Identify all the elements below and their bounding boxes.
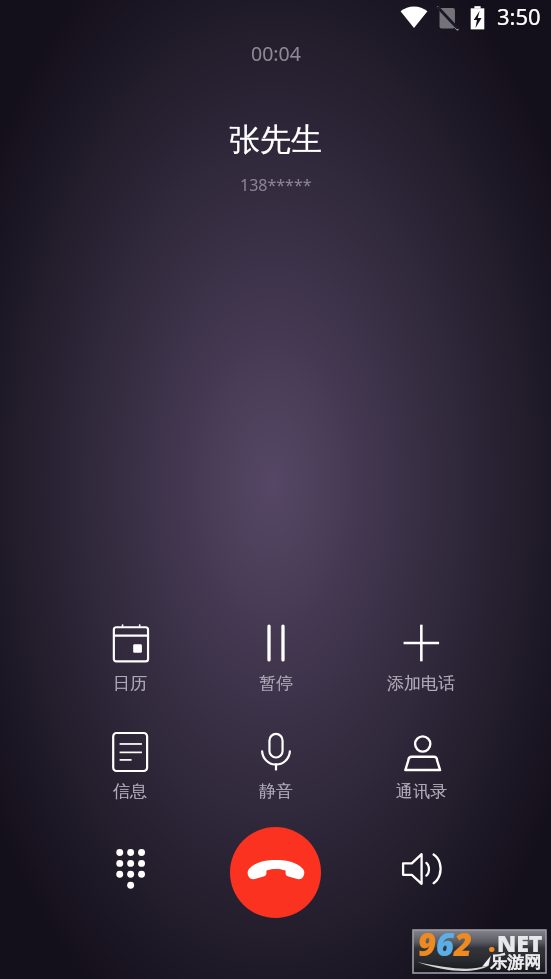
staticText: 2 bbox=[454, 923, 472, 965]
staticText: 3:50 bbox=[497, 1, 541, 31]
button[interactable]: End call bbox=[230, 827, 321, 918]
staticText: 张先生 bbox=[229, 120, 322, 159]
button[interactable]: Dialpad bbox=[99, 838, 161, 900]
button[interactable]: 信息 bbox=[75, 728, 185, 806]
staticText: 00:04 bbox=[251, 40, 301, 67]
staticText: 138***** bbox=[240, 174, 312, 196]
button[interactable]: 暂停 bbox=[221, 619, 331, 698]
staticText: 日历 bbox=[113, 673, 147, 694]
staticText: 9 bbox=[418, 923, 436, 965]
staticText: 暂停 bbox=[259, 673, 293, 694]
staticText: 添加电话 bbox=[387, 673, 455, 694]
staticText: NET bbox=[497, 927, 543, 958]
button[interactable]: Speaker bbox=[390, 838, 452, 900]
staticText: 信息 bbox=[113, 781, 147, 802]
button[interactable]: 通讯录 bbox=[366, 728, 476, 806]
staticText: 静音 bbox=[259, 781, 293, 802]
staticText: 6 bbox=[436, 923, 454, 965]
button[interactable]: 添加电话 bbox=[366, 619, 476, 698]
staticText: 通讯录 bbox=[396, 781, 447, 802]
staticText: 乐游网 bbox=[490, 952, 541, 973]
staticText: . bbox=[488, 924, 496, 959]
button[interactable]: 日历 bbox=[75, 619, 185, 698]
button[interactable]: 静音 bbox=[221, 728, 331, 806]
